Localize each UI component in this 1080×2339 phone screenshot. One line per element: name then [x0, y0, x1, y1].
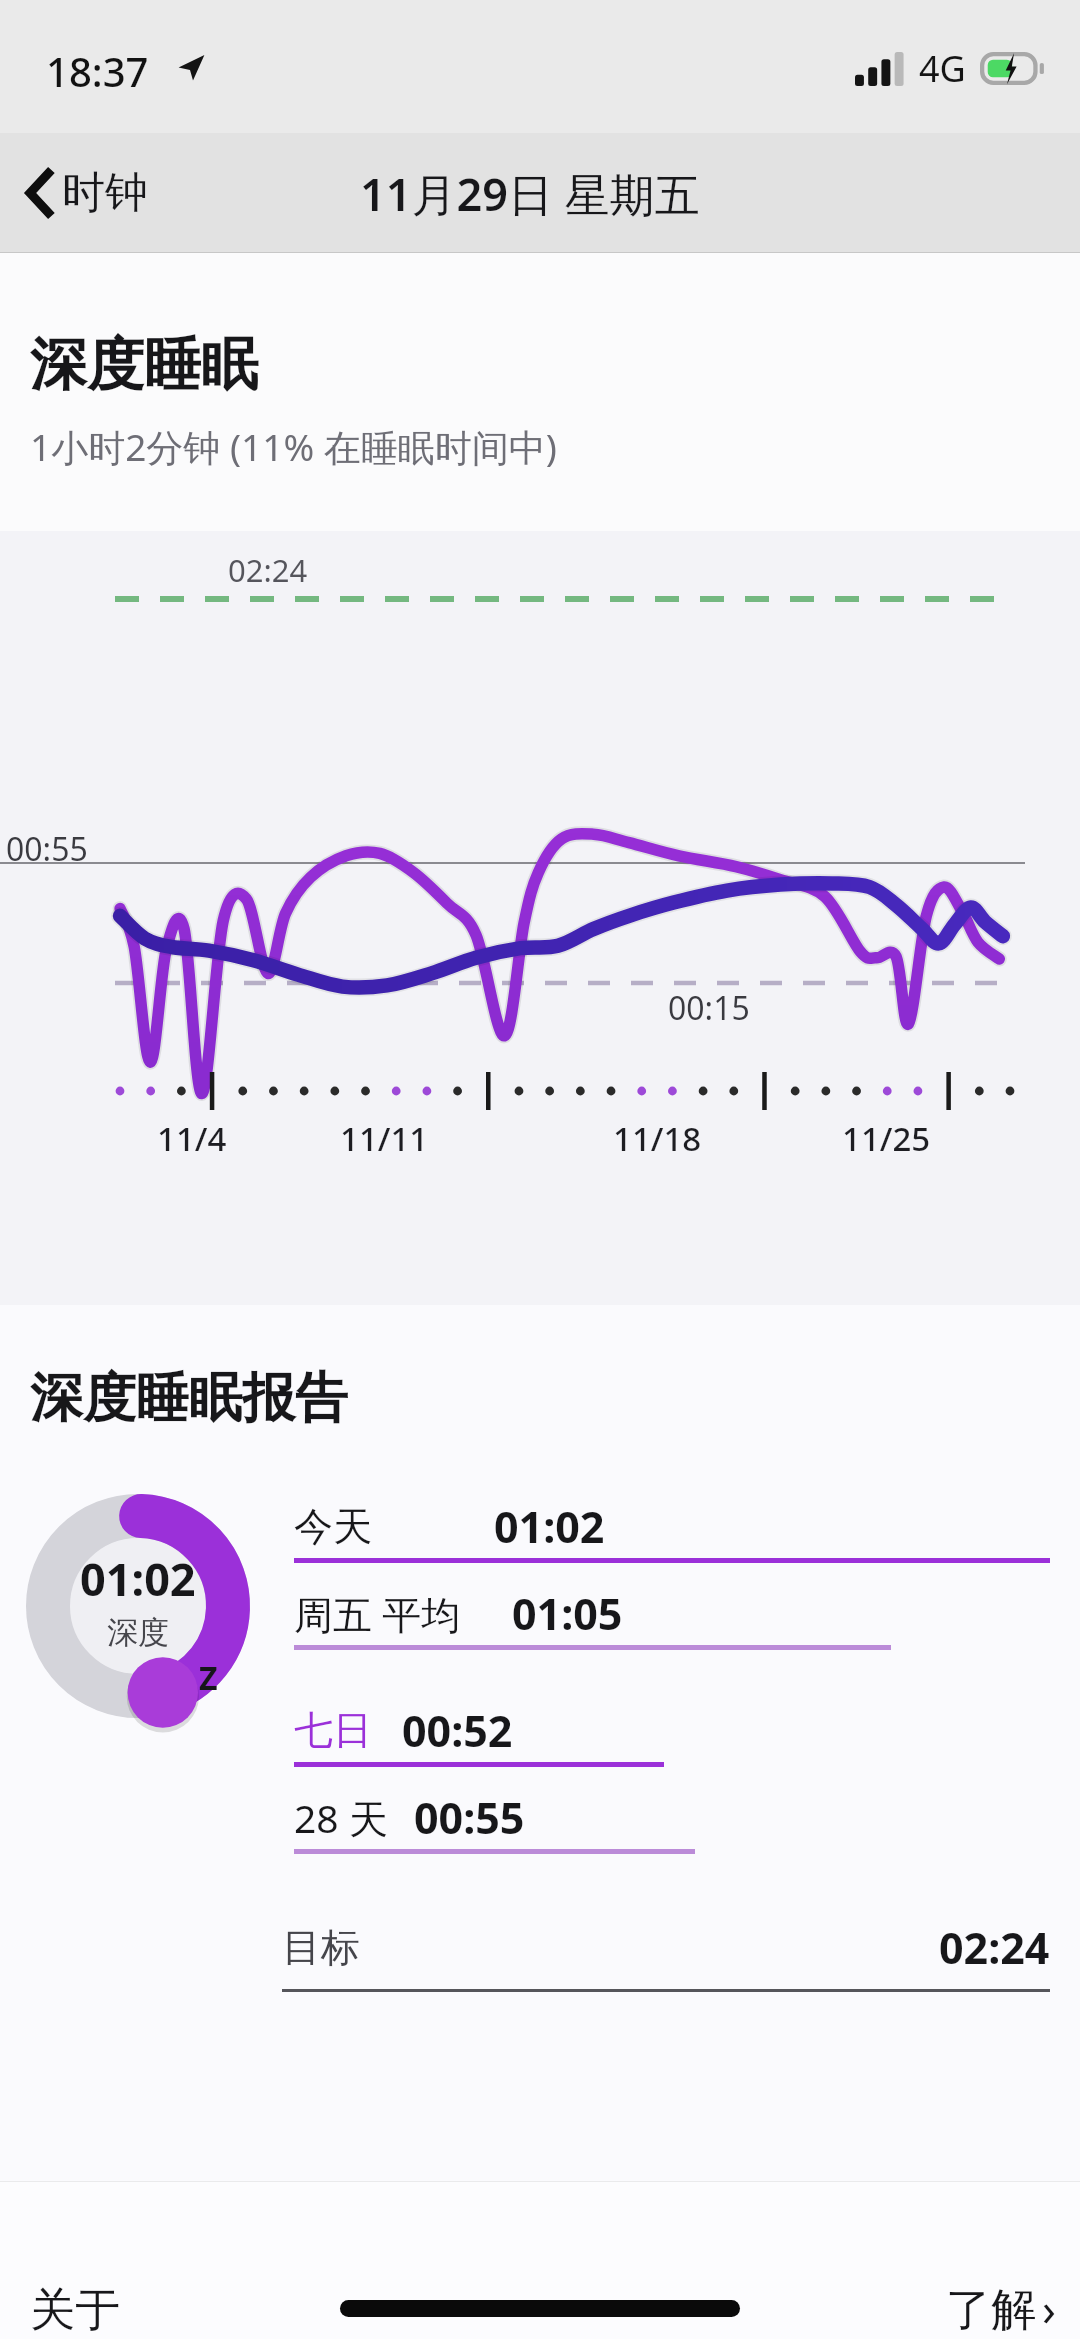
staticText: 11/4 [157, 1116, 227, 1161]
staticText: 01:05 [512, 1584, 623, 1643]
staticText: 了解 [946, 2282, 1036, 2339]
staticText: 4G [919, 44, 966, 93]
staticText: 七日 [294, 1706, 372, 1755]
staticText: 00:55 [414, 1788, 525, 1847]
button[interactable]: 今天 [294, 1494, 1050, 1581]
button[interactable]: 28 天 [294, 1785, 1050, 1872]
button[interactable]: 周五 平均 [294, 1581, 1050, 1668]
staticText: 时钟 [62, 166, 148, 220]
staticText: 11/18 [613, 1116, 702, 1161]
staticText: 00:52 [402, 1701, 513, 1760]
staticText: 1小时2分钟 (11% 在睡眠时间中) [30, 421, 557, 472]
staticText: 目标 [282, 1923, 360, 1972]
staticText: 深度睡眠 [30, 329, 258, 401]
staticText: 28 天 [294, 1791, 388, 1844]
staticText: 00:15 [668, 986, 750, 1030]
button[interactable]: 七日 [294, 1698, 1050, 1785]
staticText: 周五 平均 [294, 1587, 461, 1640]
staticText: 02:24 [939, 1918, 1050, 1977]
staticText: 02:24 [228, 549, 308, 591]
staticText: 01:02 [80, 1548, 196, 1609]
staticText: 深度 [107, 1613, 169, 1652]
staticText: 深度睡眠报告 [30, 1365, 348, 1432]
button[interactable]: 了解 [946, 2278, 1080, 2339]
button[interactable]: 深度睡眠进度环 01:02 [26, 1494, 250, 1718]
button[interactable]: 目标 [282, 1918, 1050, 1992]
staticText: 今天 [294, 1502, 372, 1551]
button[interactable]: 时钟 [20, 156, 156, 230]
staticText: › [1042, 2278, 1056, 2339]
staticText: 00:55 [6, 827, 88, 871]
staticText: 01:02 [494, 1497, 605, 1556]
staticText: 11/11 [340, 1116, 429, 1161]
staticText: 11/25 [842, 1116, 931, 1161]
button[interactable]: 关于 [0, 2282, 120, 2339]
staticText: 18:37 [46, 44, 149, 98]
staticText: 11月29日 星期五 [360, 163, 700, 224]
staticText: Z [199, 1656, 218, 1700]
